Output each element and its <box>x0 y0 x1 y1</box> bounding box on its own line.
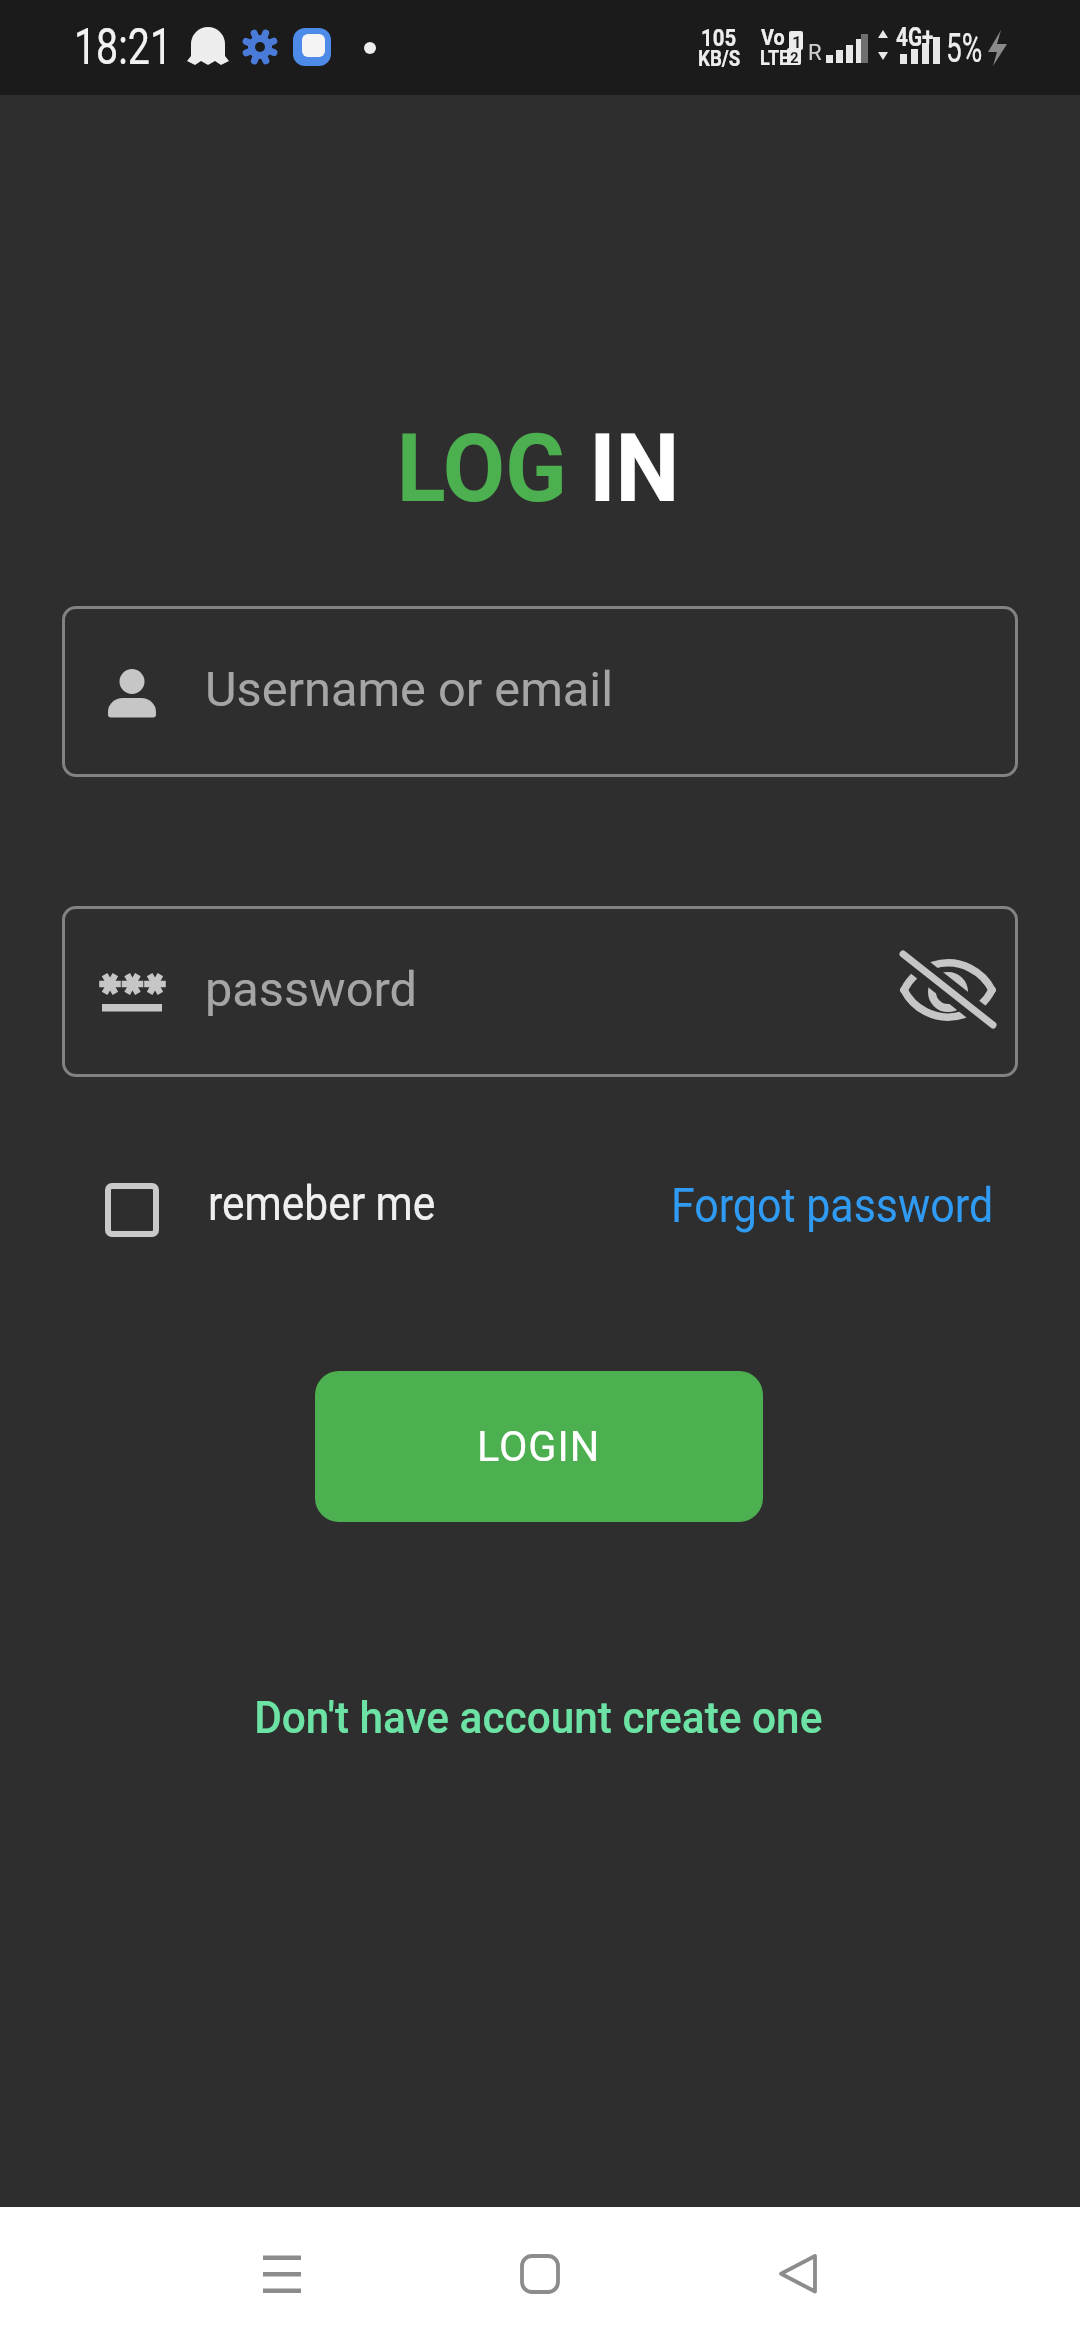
staticText: Username or email <box>205 661 613 718</box>
button[interactable]: password <box>62 906 1018 1077</box>
button[interactable]: Don't have account create one <box>236 1691 841 1744</box>
staticText: 4G+ <box>896 22 934 52</box>
staticText: 5% <box>946 25 982 72</box>
button[interactable]: Forgot password <box>633 1177 994 1233</box>
button[interactable] <box>760 2237 834 2311</box>
button[interactable]: LOGIN <box>315 1371 763 1522</box>
staticText: Vo <box>761 25 785 51</box>
staticText: LOG IN <box>397 414 680 524</box>
staticText: 1 <box>792 32 802 52</box>
staticText: R <box>808 40 822 66</box>
button[interactable] <box>245 2237 319 2311</box>
staticText: 105 <box>701 24 737 52</box>
staticText: remeber me <box>208 1175 435 1231</box>
button[interactable] <box>503 2237 577 2311</box>
staticText: LTE <box>760 46 790 69</box>
staticText: KB/S <box>698 46 740 72</box>
staticText: 18:21 <box>74 18 172 77</box>
button[interactable]: Username or email <box>62 606 1018 777</box>
button[interactable] <box>95 1170 445 1250</box>
staticText: LOGIN <box>477 1422 601 1471</box>
staticText: 2 <box>790 49 799 67</box>
staticText: password <box>205 961 417 1018</box>
